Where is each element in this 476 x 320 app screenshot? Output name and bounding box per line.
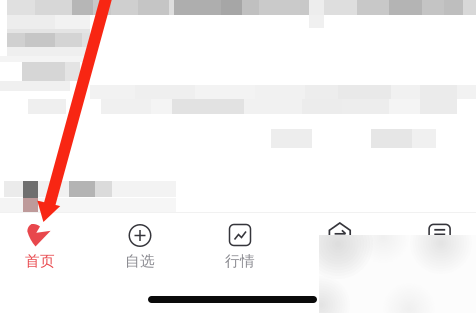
button[interactable]: 我的: [390, 214, 476, 276]
staticText: 交易: [325, 252, 355, 270]
button[interactable]: 自选: [90, 214, 190, 276]
button[interactable]: 首页: [0, 214, 90, 276]
button[interactable]: 行情: [190, 214, 290, 276]
staticText: 自选: [125, 252, 155, 270]
staticText: 首页: [25, 252, 55, 270]
staticText: 行情: [225, 252, 255, 270]
button[interactable]: 交易: [290, 214, 390, 276]
staticText: 我的: [425, 252, 455, 270]
